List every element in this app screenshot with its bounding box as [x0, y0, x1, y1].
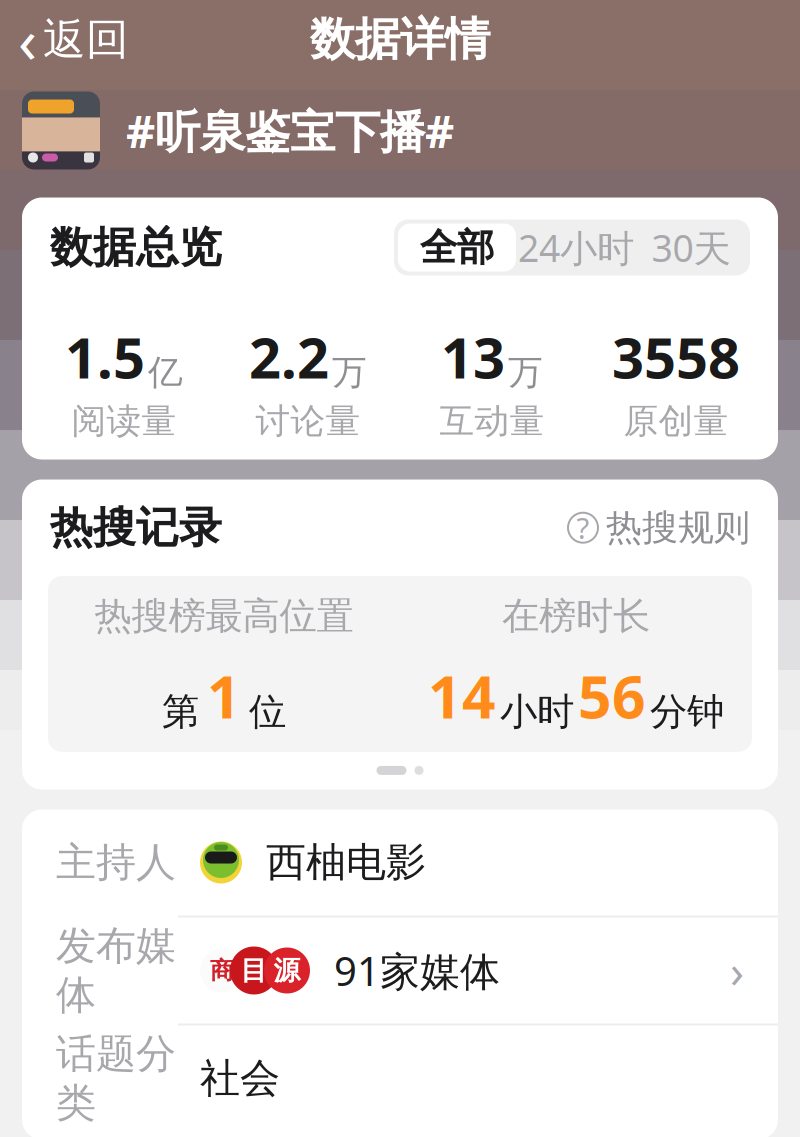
staticText: 1.5: [65, 319, 145, 394]
staticText: 数据总览: [50, 221, 222, 274]
staticText: 小时: [500, 689, 574, 735]
staticText: 商: [210, 956, 234, 985]
staticText: 30天: [651, 223, 730, 272]
staticText: 56: [578, 657, 646, 735]
staticText: 返回: [43, 13, 129, 66]
staticText: 2.2: [249, 319, 329, 394]
staticText: 24小时: [518, 223, 634, 272]
button[interactable]: ?: [568, 502, 750, 554]
staticText: ‹: [18, 0, 37, 80]
staticText: 西柚电影: [266, 838, 426, 887]
staticText: 主持人: [56, 838, 176, 887]
button[interactable]: 24小时: [516, 223, 636, 271]
staticText: 讨论量: [255, 400, 360, 442]
staticText: 第: [162, 689, 199, 735]
staticText: 阅读量: [71, 400, 176, 442]
staticText: 13: [441, 319, 505, 394]
staticText: ›: [730, 940, 744, 1001]
staticText: 亿: [148, 351, 183, 394]
staticText: 社会: [200, 1054, 280, 1103]
staticText: 热搜记录: [50, 501, 222, 554]
staticText: 热搜榜最高位置: [94, 593, 353, 639]
staticText: 源: [273, 954, 300, 987]
button[interactable]: 30天: [636, 223, 746, 271]
staticText: 14: [428, 657, 496, 735]
staticText: 万: [332, 351, 367, 394]
staticText: 原创量: [623, 400, 728, 442]
staticText: 分钟: [650, 689, 724, 735]
button[interactable]: ‹: [0, 0, 147, 88]
staticText: 数据详情: [310, 12, 490, 67]
staticText: 万: [508, 351, 543, 394]
staticText: #听泉鉴宝下播#: [126, 100, 454, 161]
staticText: 全部: [420, 225, 494, 270]
staticText: 话题分类: [56, 1029, 176, 1128]
button[interactable]: 全部: [398, 223, 516, 271]
staticText: 热搜规则: [606, 506, 750, 550]
staticText: 1: [207, 657, 241, 735]
staticText: 互动量: [439, 400, 544, 442]
staticText: ?: [576, 508, 589, 547]
staticText: 目: [240, 954, 267, 987]
staticText: 在榜时长: [502, 593, 650, 639]
staticText: 位: [249, 689, 286, 735]
staticText: 发布媒体: [56, 921, 176, 1020]
staticText: 3558: [612, 319, 740, 394]
button[interactable]: 发布媒体: [22, 917, 778, 1023]
staticText: 91家媒体: [334, 944, 500, 997]
